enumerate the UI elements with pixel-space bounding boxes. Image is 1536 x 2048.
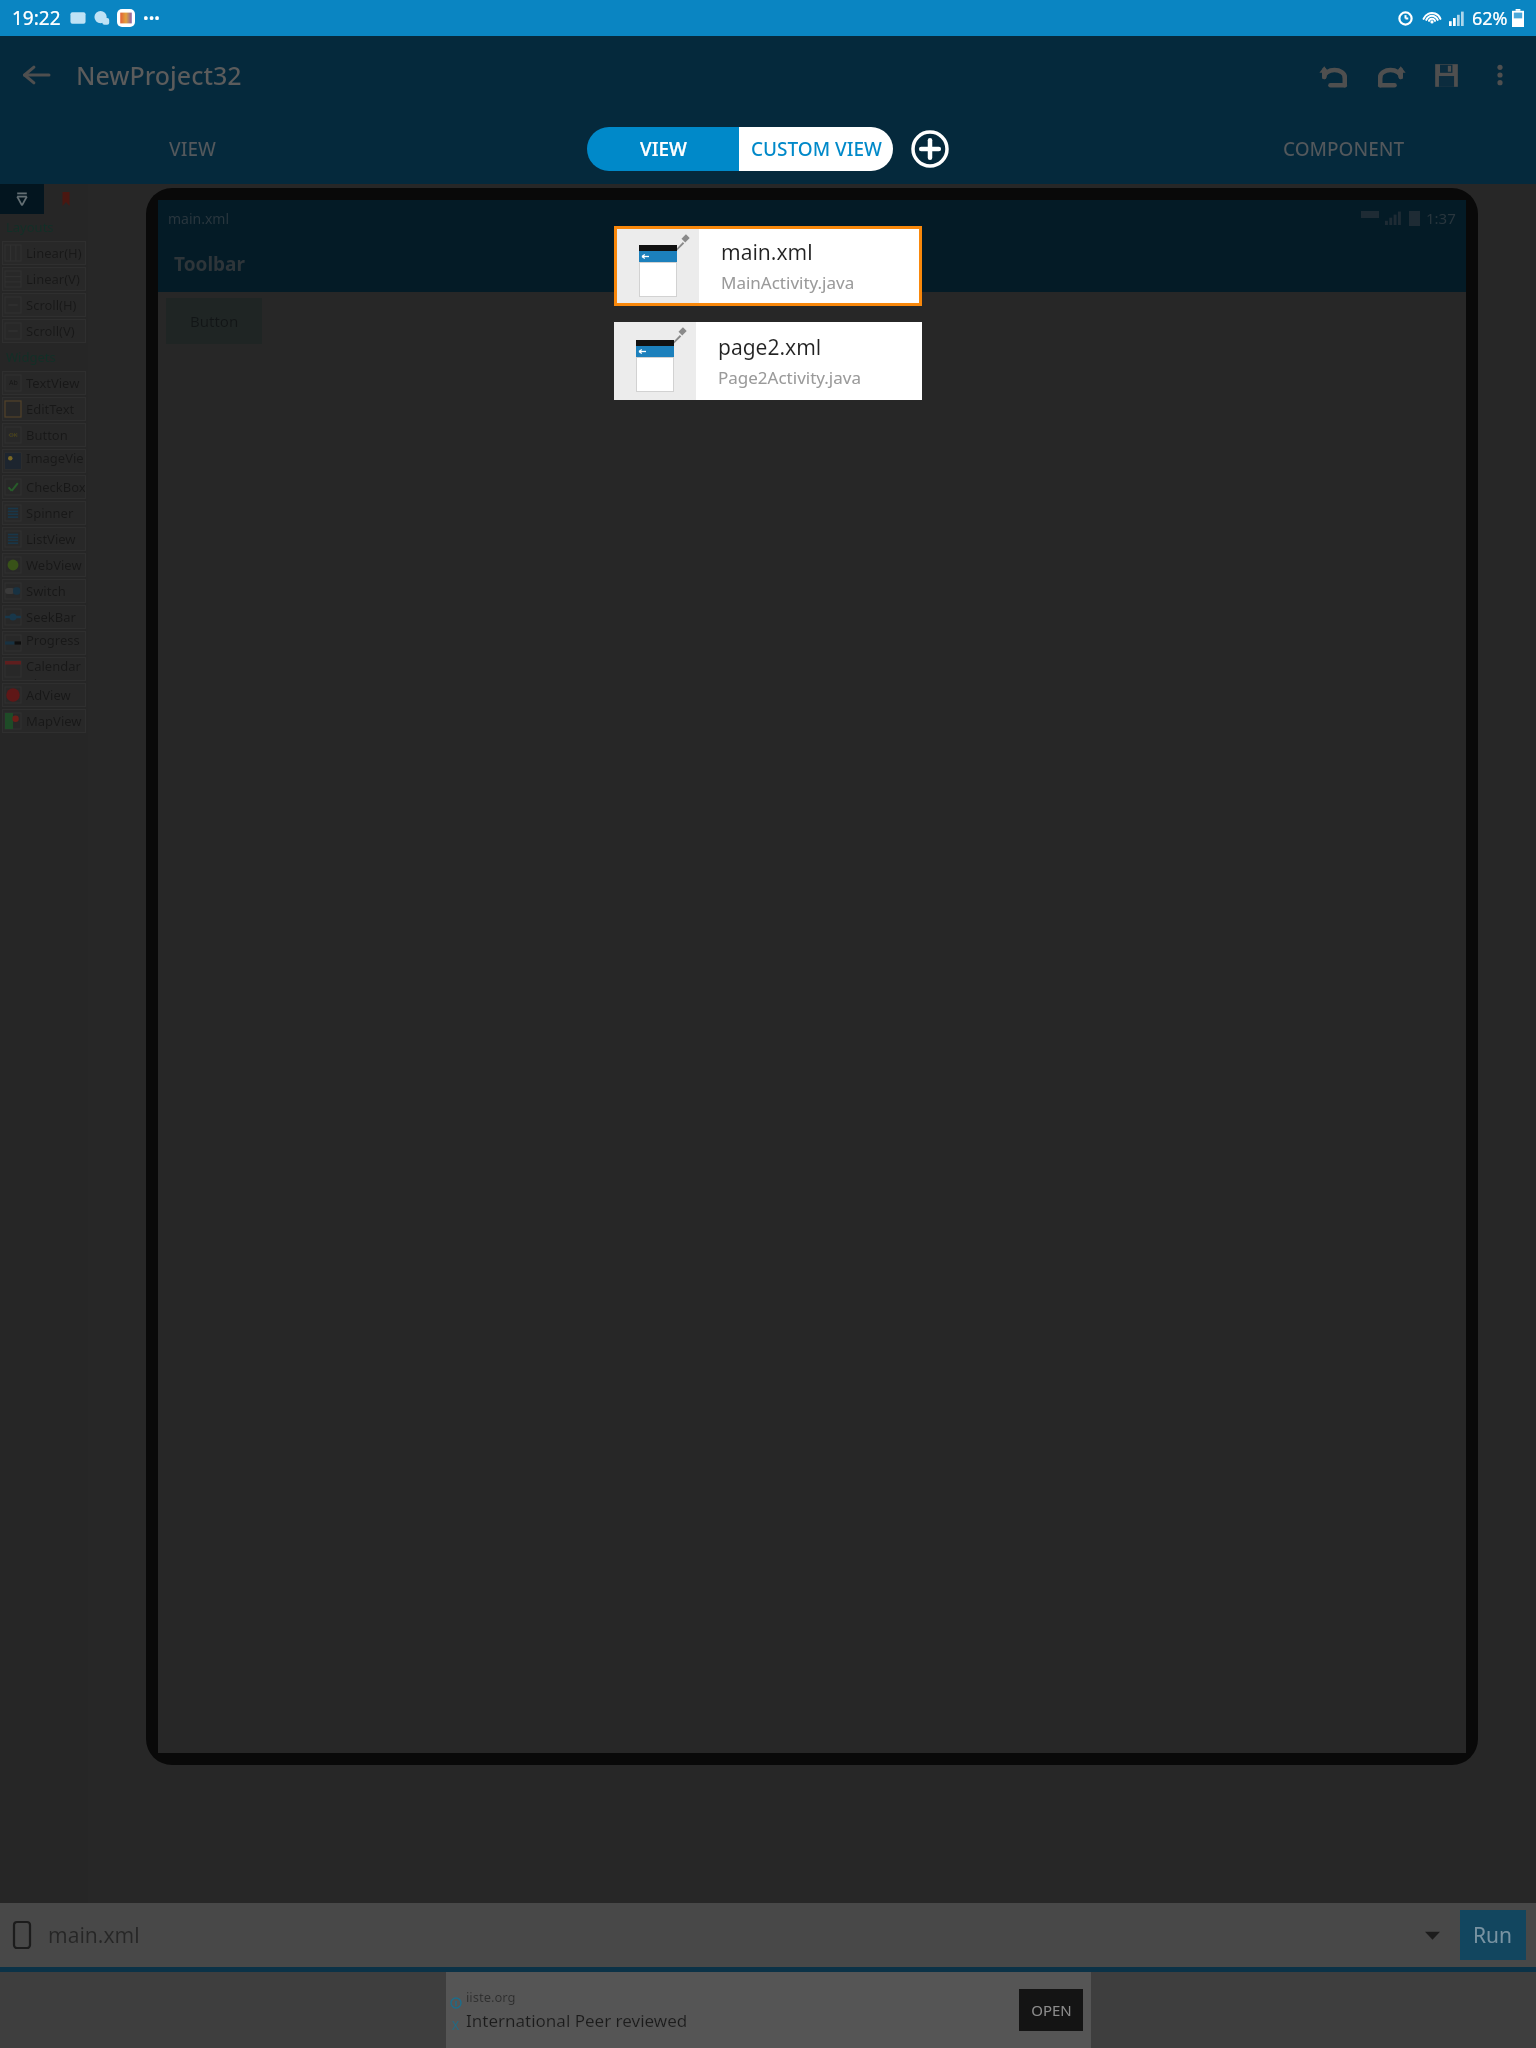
staticText: Toolbar	[174, 251, 245, 277]
button[interactable]: Add view	[911, 130, 949, 168]
staticText: MainActivity.java	[721, 271, 855, 294]
staticText: AdView	[26, 686, 71, 704]
staticText: page2.xml	[718, 333, 822, 362]
button[interactable]: CUSTOM VIEW	[739, 127, 893, 171]
staticText: 62%	[1472, 6, 1508, 31]
button[interactable]: Spinner	[2, 501, 86, 525]
button[interactable]: page2.xml	[614, 322, 922, 400]
button[interactable]: VIEW	[0, 114, 384, 184]
button[interactable]: WebView	[2, 553, 86, 577]
button[interactable]: Bookmarks	[44, 184, 88, 214]
staticText: SeekBar	[26, 608, 76, 626]
button[interactable]: X	[446, 1972, 1091, 2048]
button[interactable]: Ab	[2, 371, 86, 395]
button[interactable]: OPEN	[1019, 1989, 1083, 2031]
staticText: International Peer reviewed	[466, 2009, 688, 2032]
button[interactable]: CheckBox	[2, 475, 86, 499]
staticText: CalendarView	[26, 657, 86, 681]
button[interactable]: ImageView	[2, 449, 86, 473]
button[interactable]: COMPONENT	[1152, 114, 1536, 184]
button[interactable]: More options	[1474, 49, 1526, 101]
button[interactable]: VIEW	[587, 127, 739, 171]
staticText: X	[452, 2017, 460, 2033]
staticText: VIEW	[640, 136, 687, 162]
staticText: Switch	[26, 582, 66, 600]
staticText: COMPONENT	[1283, 136, 1405, 162]
staticText: WebView	[26, 556, 82, 574]
button[interactable]: Back	[10, 49, 62, 101]
button[interactable]: ListView	[2, 527, 86, 551]
staticText: VIEW	[169, 136, 216, 162]
button[interactable]: CalendarView	[2, 657, 86, 681]
button[interactable]: MapView	[2, 709, 86, 733]
staticText: Page2Activity.java	[718, 366, 861, 389]
staticText: Spinner	[26, 504, 74, 522]
staticText: OPEN	[1031, 2000, 1072, 2020]
staticText: 1:37	[1426, 208, 1456, 228]
staticText: Button	[190, 311, 239, 331]
button[interactable]: AdView	[2, 683, 86, 707]
staticText: Run	[1473, 1921, 1513, 1950]
button[interactable]: Linear(H)	[2, 241, 86, 265]
button[interactable]: SeekBar	[2, 605, 86, 629]
staticText: ProgressBar	[26, 631, 86, 655]
button[interactable]: Palette	[0, 184, 44, 214]
button[interactable]: Run	[1460, 1910, 1526, 1960]
button[interactable]: Scroll(H)	[2, 293, 86, 317]
staticText: Widgets	[6, 348, 56, 366]
button[interactable]: Scroll(V)	[2, 319, 86, 343]
staticText: CUSTOM VIEW	[751, 136, 882, 162]
button[interactable]: Linear(V)	[2, 267, 86, 291]
staticText: main.xml	[168, 209, 230, 228]
staticText: Button	[26, 426, 68, 444]
button[interactable]: OK	[2, 423, 86, 447]
button[interactable]: Switch	[2, 579, 86, 603]
staticText: NewProject32	[76, 58, 242, 92]
staticText: OK	[9, 431, 18, 439]
staticText: TextView	[26, 374, 80, 392]
staticText: Linear(V)	[26, 270, 80, 288]
button[interactable]: EditText	[2, 397, 86, 421]
staticText: Scroll(V)	[26, 322, 75, 340]
staticText: •••	[143, 8, 160, 28]
button[interactable]: Save	[1418, 47, 1474, 103]
staticText: Ab	[9, 378, 18, 388]
staticText: Scroll(H)	[26, 296, 77, 314]
staticText: main.xml	[48, 1921, 140, 1950]
button[interactable]: ProgressBar	[2, 631, 86, 655]
staticText: ImageView	[26, 449, 86, 473]
staticText: iiste.org	[466, 1988, 516, 2006]
button[interactable]: Undo	[1306, 47, 1362, 103]
staticText: Layouts	[6, 218, 54, 236]
staticText: Linear(H)	[26, 244, 82, 262]
button[interactable]: main.xml	[617, 229, 919, 303]
staticText: CheckBox	[26, 478, 86, 496]
staticText: EditText	[26, 400, 75, 418]
button[interactable]: Redo	[1362, 47, 1418, 103]
staticText: MapView	[26, 712, 82, 730]
staticText: 19:22	[12, 5, 61, 31]
staticText: main.xml	[721, 238, 813, 267]
button[interactable]: Select layout	[1410, 1913, 1454, 1957]
staticText: ListView	[26, 530, 76, 548]
